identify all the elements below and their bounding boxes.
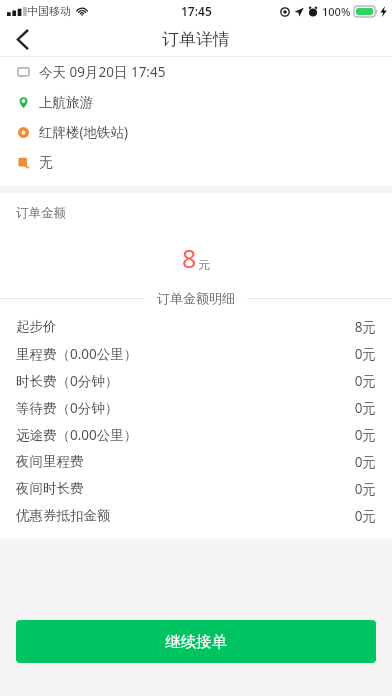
staticText: 夜间时长费 — [16, 480, 84, 497]
staticText: 继续接单 — [165, 632, 227, 652]
staticText: 0元 — [354, 507, 376, 525]
staticText: 元 — [198, 257, 210, 272]
button[interactable]: 红牌楼(地铁站) — [0, 117, 392, 147]
button[interactable]: 夜间时长费 — [0, 475, 392, 502]
staticText: 夜间里程费 — [16, 453, 84, 470]
staticText: 订单金额明细 — [157, 290, 235, 306]
staticText: 订单详情 — [162, 29, 230, 50]
staticText: 起步价 — [16, 318, 57, 335]
button[interactable]: 今天 09月20日 17:45 — [0, 57, 392, 87]
button[interactable]: 优惠券抵扣金额 — [0, 502, 392, 529]
button[interactable]: 时长费（0分钟） — [0, 367, 392, 394]
staticText: 远途费（0.00公里） — [16, 426, 138, 444]
staticText: 0元 — [354, 372, 376, 390]
staticText: 等待费（0分钟） — [16, 399, 119, 417]
staticText: 上航旅游 — [39, 94, 93, 111]
staticText: 0元 — [354, 345, 376, 363]
staticText: 红牌楼(地铁站) — [39, 123, 129, 141]
button[interactable]: Back — [0, 22, 44, 57]
staticText: 0元 — [354, 426, 376, 444]
staticText: 17:45 — [181, 3, 212, 19]
staticText: 8元 — [354, 318, 376, 336]
button[interactable]: 等待费（0分钟） — [0, 394, 392, 421]
staticText: 0元 — [354, 480, 376, 498]
button[interactable]: 起步价 — [0, 313, 392, 340]
staticText: 订单金额 — [16, 205, 66, 221]
button[interactable]: 夜间里程费 — [0, 448, 392, 475]
staticText: 今天 09月20日 17:45 — [39, 63, 166, 81]
button[interactable]: 远途费（0.00公里） — [0, 421, 392, 448]
staticText: 8 — [182, 241, 197, 275]
staticText: 中国移动 — [27, 4, 71, 18]
button[interactable]: 继续接单 — [16, 620, 376, 663]
staticText: 0元 — [354, 453, 376, 471]
staticText: 里程费（0.00公里） — [16, 345, 138, 363]
button[interactable]: 里程费（0.00公里） — [0, 340, 392, 367]
button[interactable]: 上航旅游 — [0, 87, 392, 117]
button[interactable]: 无 — [0, 147, 392, 177]
staticText: 0元 — [354, 399, 376, 417]
staticText: 无 — [39, 154, 53, 171]
staticText: 优惠券抵扣金额 — [16, 507, 111, 524]
staticText: 100% — [322, 4, 351, 19]
staticText: 时长费（0分钟） — [16, 372, 119, 390]
